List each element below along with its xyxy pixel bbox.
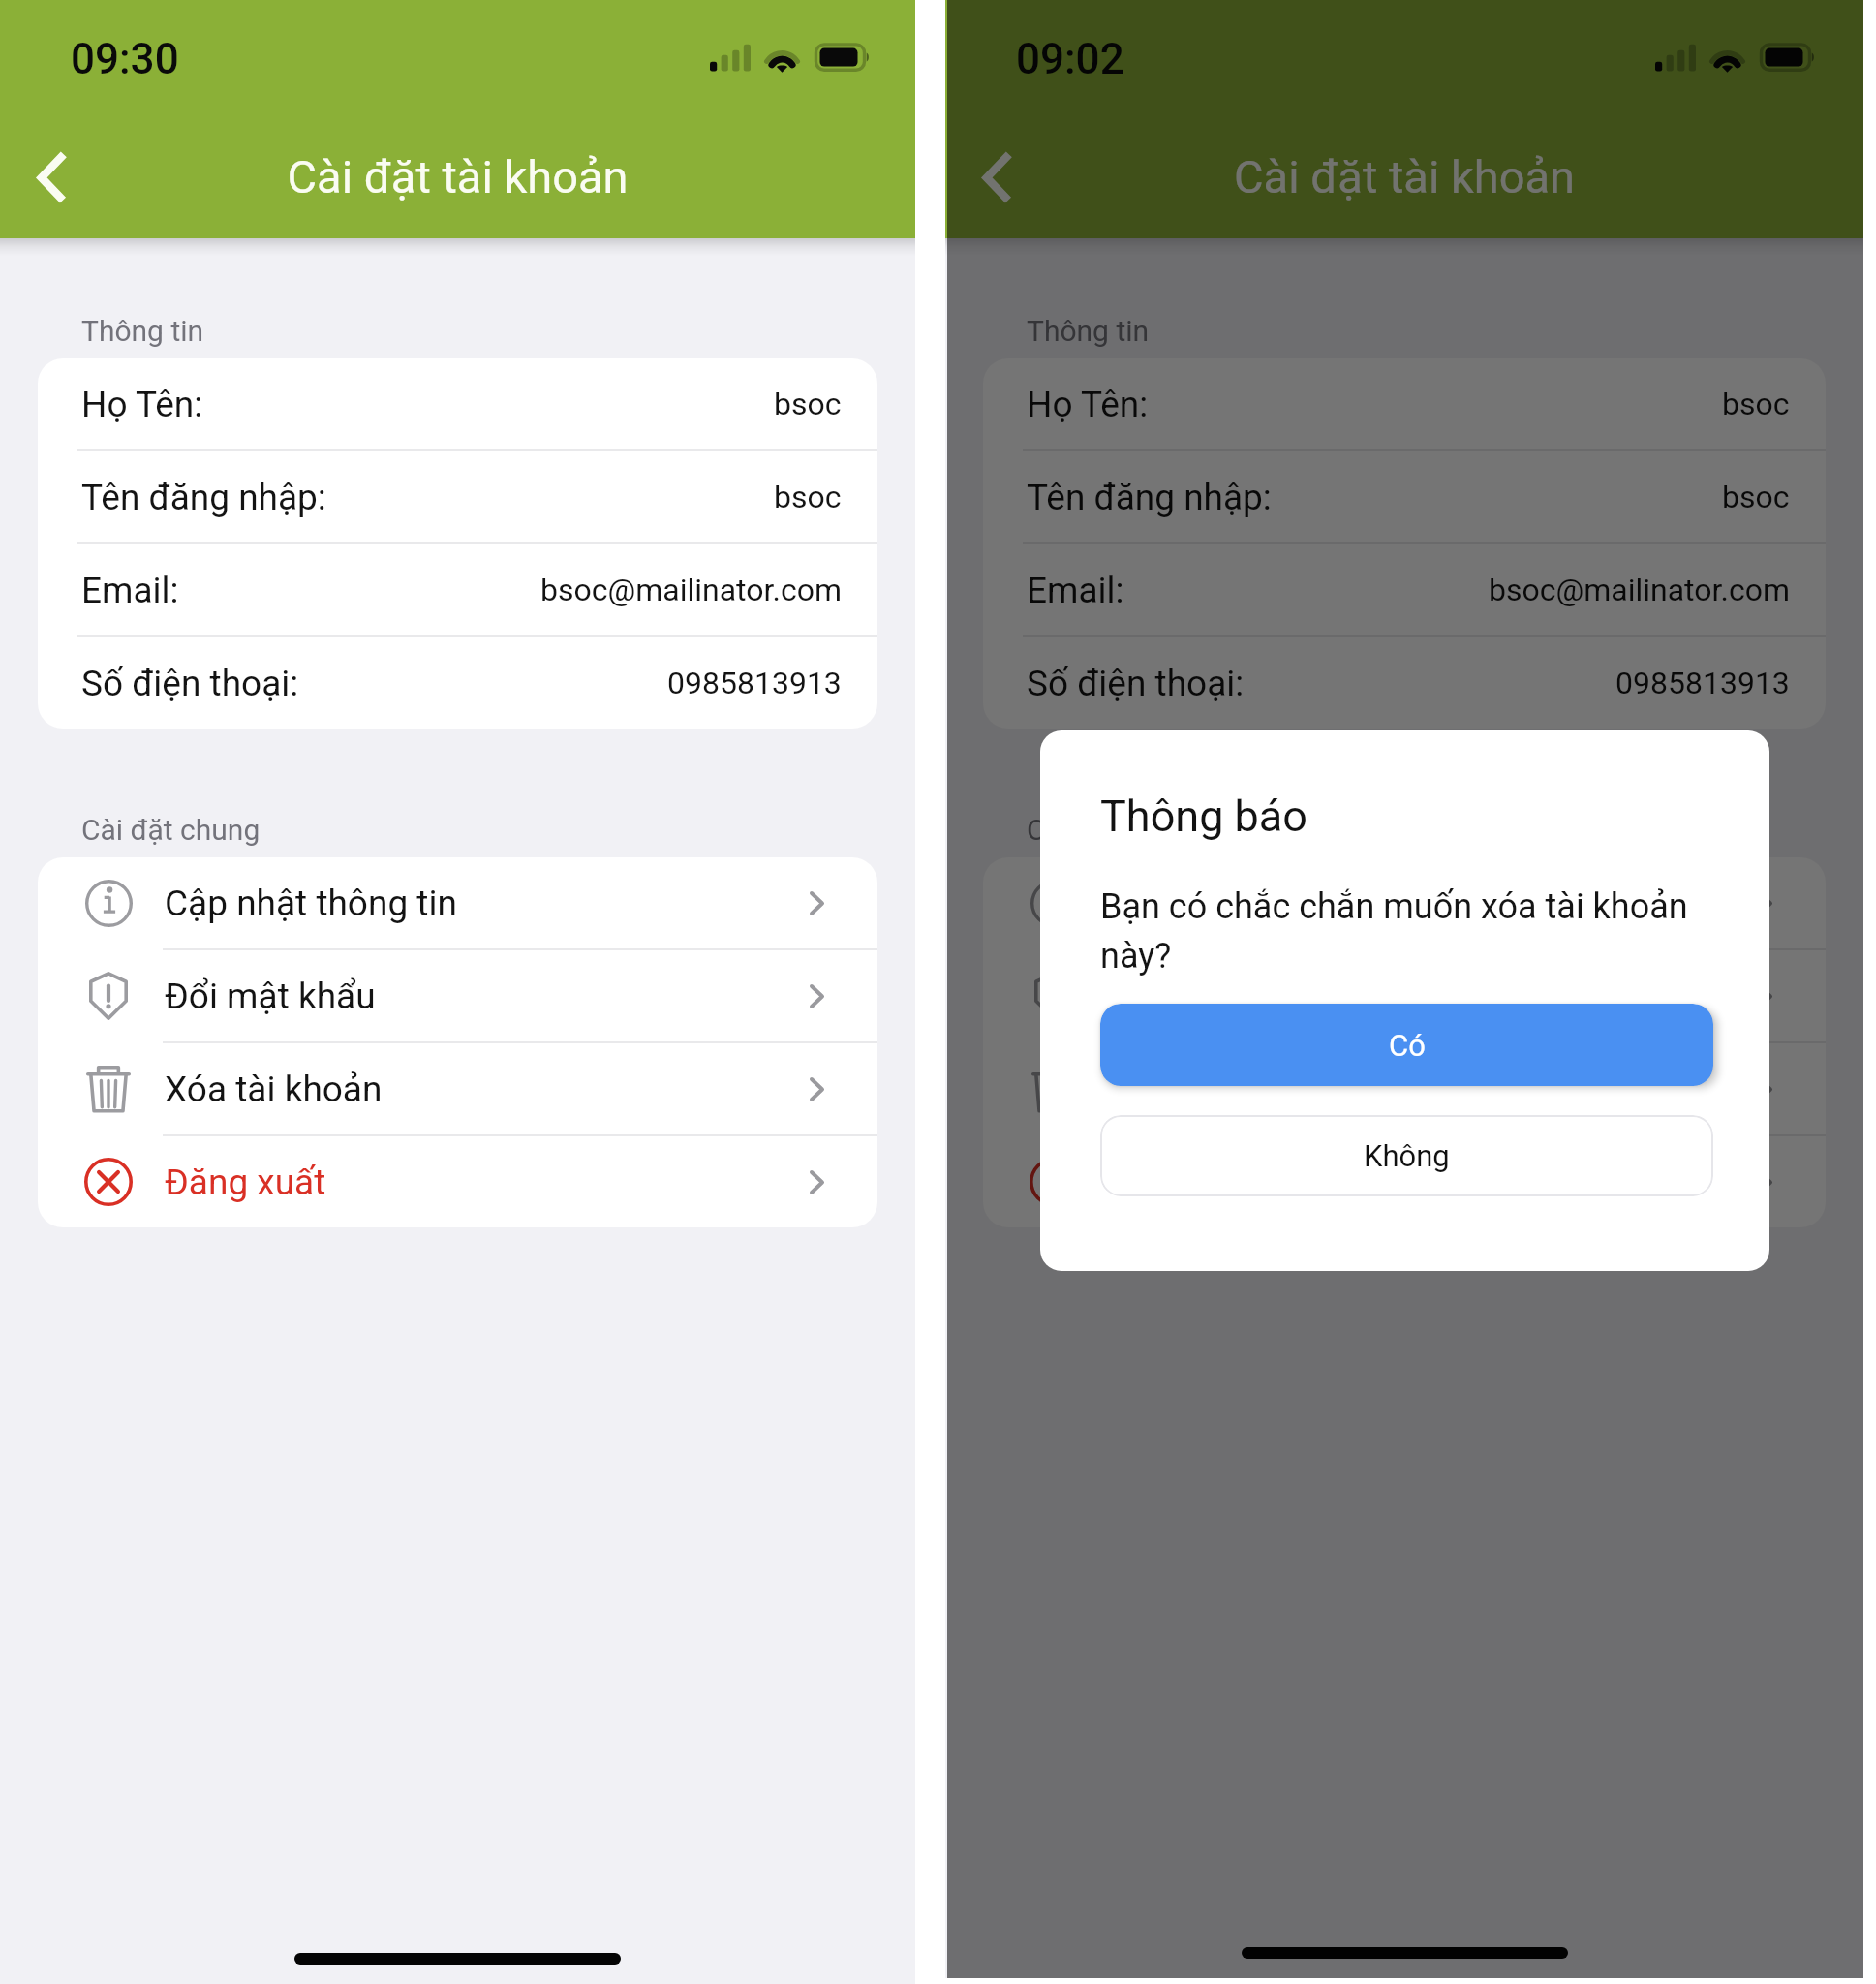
staticText: Đăng xuất xyxy=(165,1162,326,1203)
staticText: bsoc xyxy=(1722,479,1790,515)
staticText: Thông tin xyxy=(81,314,204,348)
staticText: Đăng xuất xyxy=(1110,1162,1272,1203)
staticText: Có xyxy=(1389,1028,1426,1063)
button[interactable]: Tên đăng nhập: xyxy=(983,451,1826,542)
button[interactable]: Back xyxy=(945,127,1046,224)
button[interactable]: Không xyxy=(1100,1115,1713,1196)
staticText: Cài đặt tài khoản xyxy=(0,150,915,203)
button[interactable]: Đổi mật khẩu xyxy=(983,950,1826,1041)
staticText: Tên đăng nhập: xyxy=(1027,477,1272,518)
button[interactable]: Tên đăng nhập: xyxy=(38,451,877,542)
staticText: 09:02 xyxy=(1016,34,1124,84)
staticText: Không xyxy=(1364,1138,1450,1173)
button[interactable]: Họ Tên: xyxy=(38,358,877,449)
staticText: 0985813913 xyxy=(667,665,842,701)
staticText: Đổi mật khẩu xyxy=(165,976,376,1017)
staticText: Số điện thoại: xyxy=(1027,663,1245,704)
button[interactable]: Đổi mật khẩu xyxy=(38,950,877,1041)
button[interactable]: Back xyxy=(0,127,101,224)
staticText: 0985813913 xyxy=(1615,665,1790,701)
staticText: Họ Tên: xyxy=(1027,384,1149,425)
staticText: Thông báo xyxy=(1100,790,1307,842)
staticText: bsoc@mailinator.com xyxy=(1489,572,1790,608)
staticText: bsoc@mailinator.com xyxy=(540,572,842,608)
staticText: bsoc xyxy=(774,386,842,422)
staticText: Bạn có chắc chắn muốn xóa tài khoản này? xyxy=(1100,886,1713,976)
staticText: Xóa tài khoản xyxy=(165,1069,383,1110)
button[interactable]: Số điện thoại: xyxy=(983,637,1826,728)
button[interactable]: Xóa tài khoản xyxy=(38,1043,877,1134)
staticText: Xóa tài khoản xyxy=(1110,1069,1328,1110)
staticText: Email: xyxy=(1027,570,1124,611)
staticText: Tên đăng nhập: xyxy=(81,477,326,518)
button[interactable]: Email: xyxy=(38,544,877,635)
staticText: Họ Tên: xyxy=(81,384,203,425)
button[interactable]: Email: xyxy=(983,544,1826,635)
staticText: bsoc xyxy=(1722,386,1790,422)
button[interactable]: Số điện thoại: xyxy=(38,637,877,728)
staticText: Thông tin xyxy=(1027,314,1150,348)
button[interactable]: Đăng xuất xyxy=(38,1136,877,1227)
staticText: Đổi mật khẩu xyxy=(1110,976,1321,1017)
staticText: Cập nhật thông tin xyxy=(1110,883,1402,924)
staticText: Cài đặt chung xyxy=(1027,813,1206,847)
staticText: Email: xyxy=(81,570,179,611)
staticText: Cập nhật thông tin xyxy=(165,883,457,924)
staticText: Cài đặt tài khoản xyxy=(945,150,1863,203)
button[interactable]: Xóa tài khoản xyxy=(983,1043,1826,1134)
button[interactable]: Có xyxy=(1100,1004,1713,1086)
staticText: 09:30 xyxy=(71,34,179,84)
button[interactable]: Cập nhật thông tin xyxy=(38,857,877,948)
staticText: bsoc xyxy=(774,479,842,515)
button[interactable]: Họ Tên: xyxy=(983,358,1826,449)
button[interactable]: Đăng xuất xyxy=(983,1136,1826,1227)
button[interactable]: Cập nhật thông tin xyxy=(983,857,1826,948)
staticText: Cài đặt chung xyxy=(81,813,261,847)
staticText: Số điện thoại: xyxy=(81,663,299,704)
